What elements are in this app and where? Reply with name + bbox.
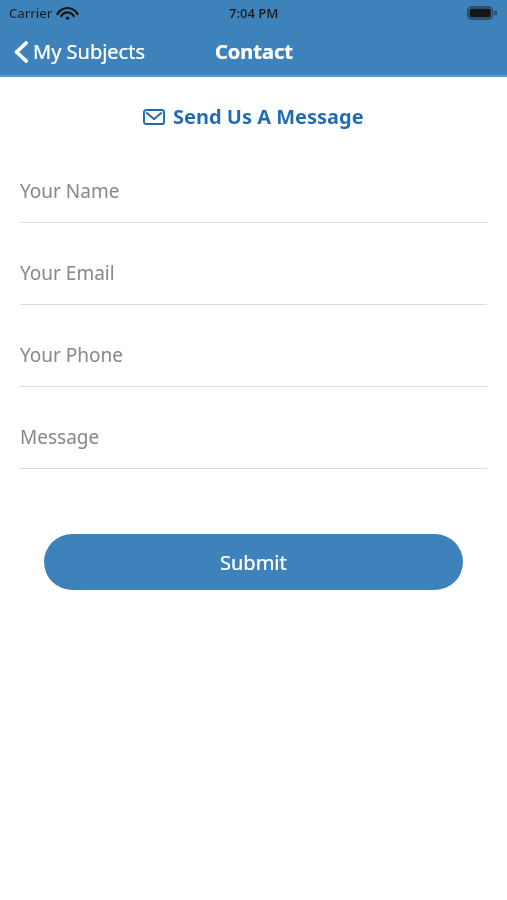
staticText: Your Name [20,178,120,204]
staticText: Contact [215,38,293,65]
button[interactable]: Your Name [0,160,507,242]
staticText: Carrier [9,4,53,22]
staticText: My Subjects [33,38,146,65]
staticText: Message [20,424,100,450]
staticText: Submit [220,549,287,576]
button[interactable]: Submit [44,534,463,590]
other: Email [143,109,165,125]
button[interactable]: Back [0,30,158,73]
staticText: 7:04 PM [229,4,279,22]
button[interactable]: Your Email [0,242,507,324]
staticText: Your Email [20,260,115,286]
staticText: Your Phone [20,342,124,368]
staticText: Send Us A Message [173,103,364,130]
button[interactable]: Your Phone [0,324,507,406]
button[interactable]: Message [0,406,507,488]
button[interactable]: Email [0,99,507,134]
other: Back [14,40,28,64]
